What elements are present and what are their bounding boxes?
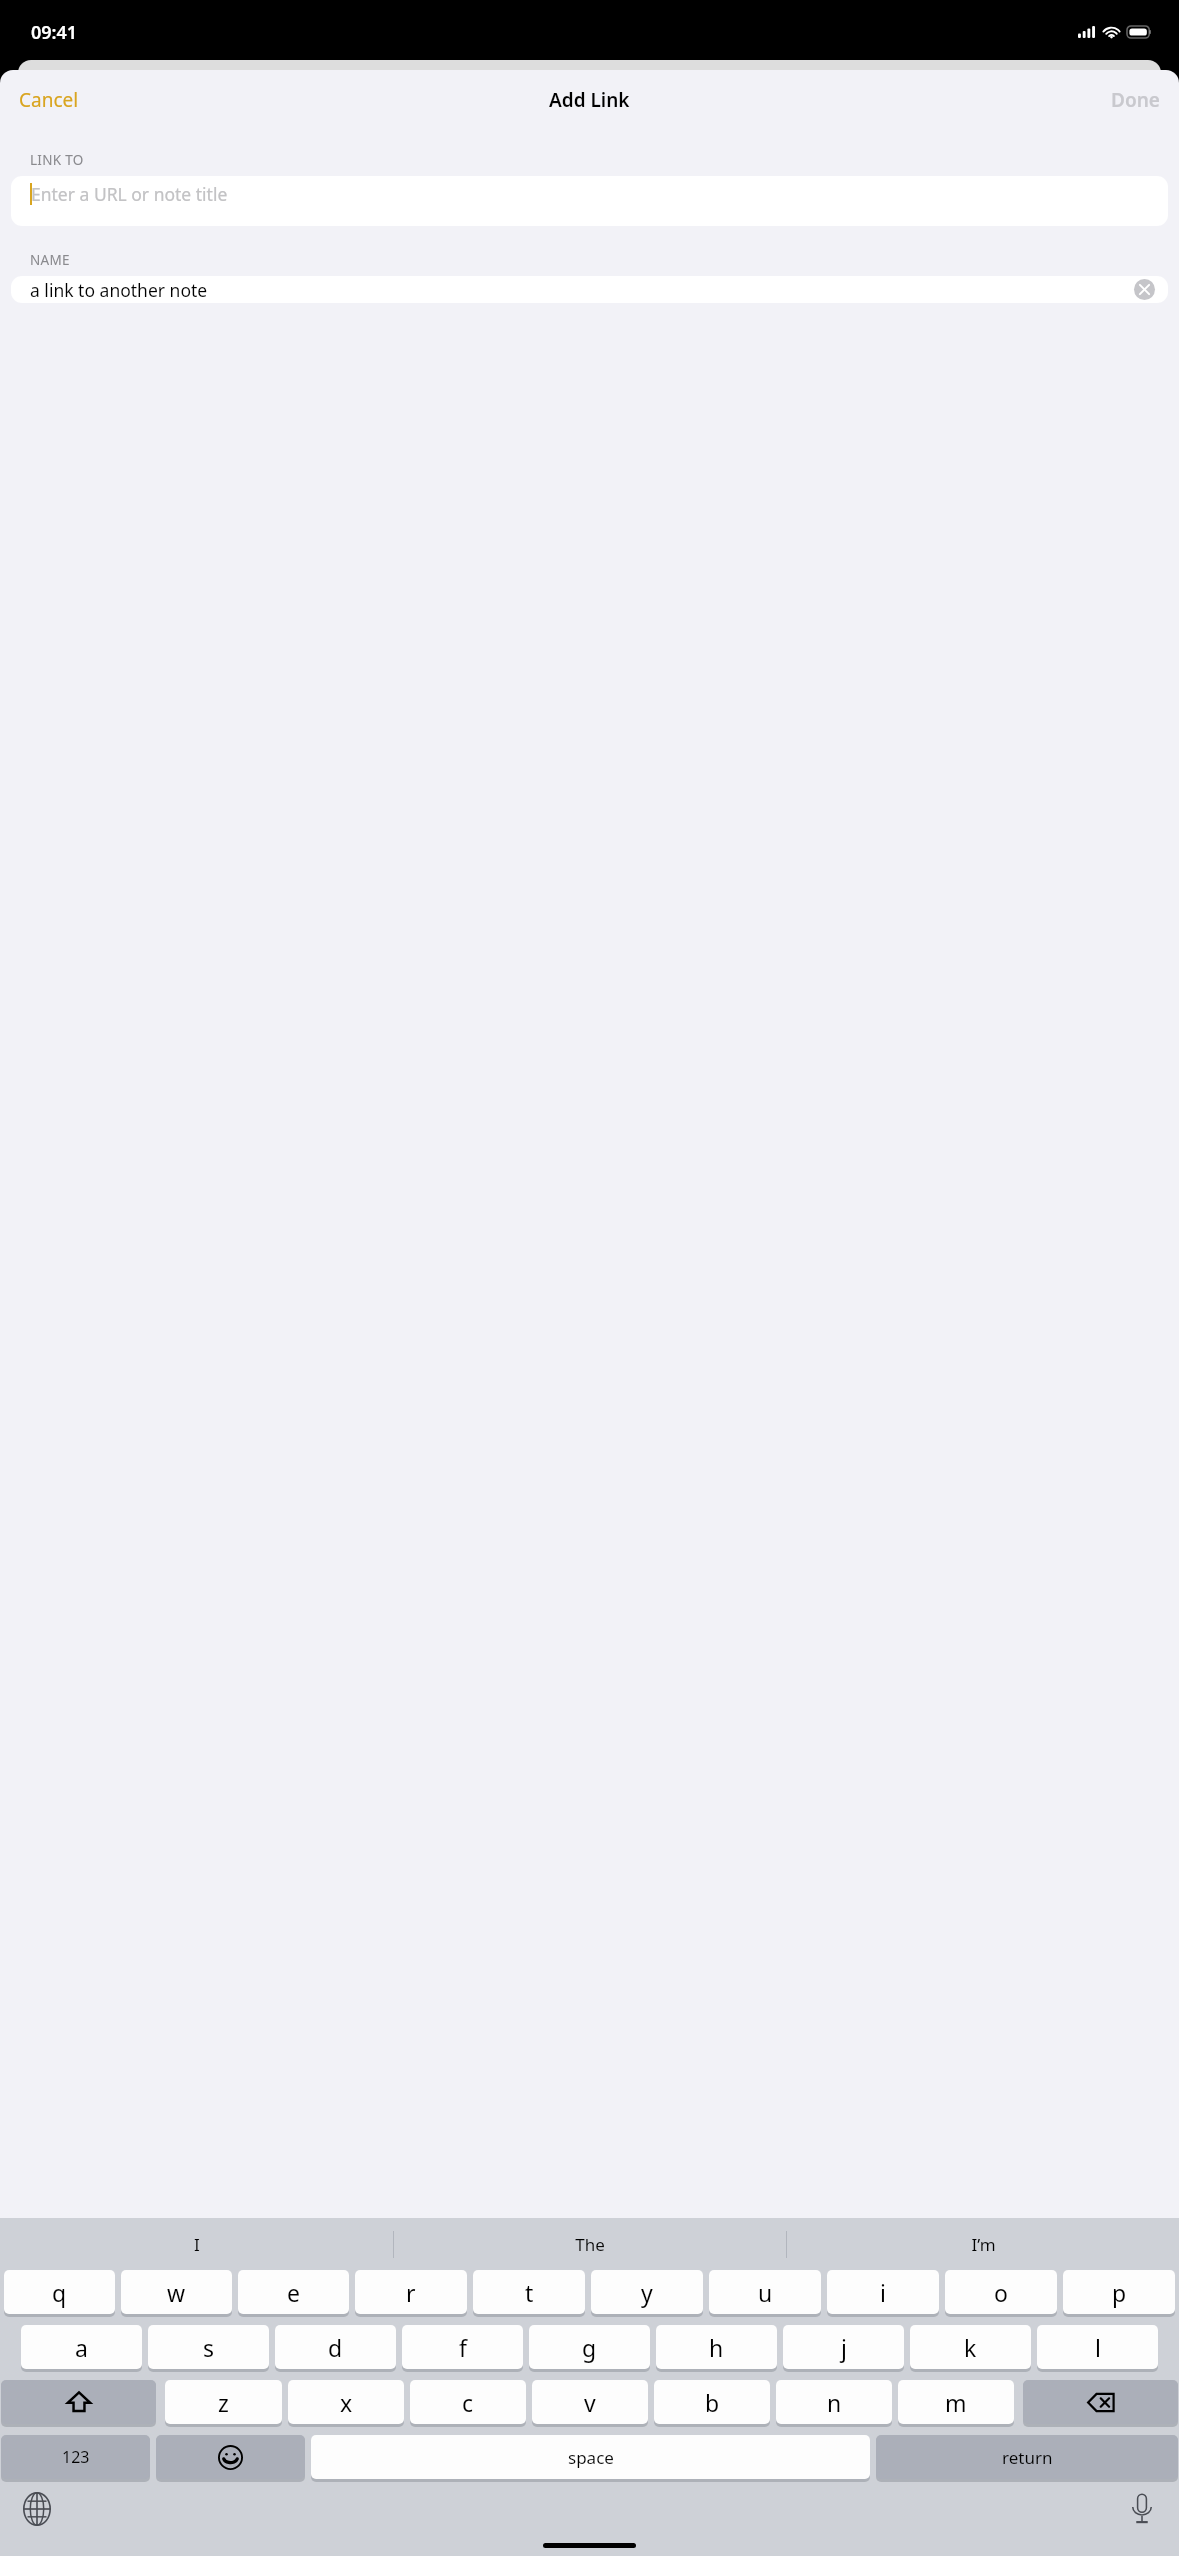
button[interactable]: space	[311, 2435, 870, 2481]
button[interactable]: Clear text	[1134, 279, 1155, 300]
staticText: h	[709, 2332, 724, 2363]
button[interactable]: x	[288, 2380, 404, 2426]
button[interactable]: h	[656, 2325, 777, 2371]
button[interactable]: 123	[1, 2435, 150, 2481]
staticText: space	[568, 2446, 614, 2469]
staticText: g	[582, 2332, 597, 2363]
staticText: i	[880, 2277, 886, 2308]
button[interactable]: a	[21, 2325, 142, 2371]
staticText: n	[827, 2387, 842, 2418]
button[interactable]: v	[532, 2380, 648, 2426]
button[interactable]: Enter a URL or note title	[11, 176, 1168, 226]
button[interactable]: m	[898, 2380, 1014, 2426]
button[interactable]: c	[410, 2380, 526, 2426]
staticText: e	[287, 2277, 300, 2308]
staticText: I	[194, 2233, 200, 2256]
button[interactable]: Cancel	[0, 78, 98, 122]
button[interactable]: w	[121, 2270, 232, 2316]
staticText: The	[575, 2233, 605, 2256]
staticText: z	[218, 2387, 229, 2418]
button[interactable]: y	[591, 2270, 703, 2316]
button[interactable]: f	[402, 2325, 523, 2371]
staticText: s	[203, 2332, 215, 2363]
button[interactable]: t	[473, 2270, 585, 2316]
staticText: k	[964, 2332, 977, 2363]
staticText: q	[52, 2277, 67, 2308]
staticText: return	[1002, 2446, 1053, 2469]
button[interactable]: k	[910, 2325, 1031, 2371]
staticText: b	[705, 2387, 720, 2418]
staticText: v	[584, 2387, 596, 2418]
button[interactable]: Done	[1092, 78, 1179, 122]
button[interactable]: i	[827, 2270, 939, 2316]
button[interactable]: Emoji	[156, 2435, 305, 2481]
staticText: u	[758, 2277, 773, 2308]
button[interactable]: g	[529, 2325, 650, 2371]
staticText: Cancel	[19, 87, 79, 113]
button[interactable]: b	[654, 2380, 770, 2426]
button[interactable]: d	[275, 2325, 396, 2371]
button[interactable]: Switch keyboard	[14, 2486, 60, 2532]
button[interactable]: u	[709, 2270, 821, 2316]
staticText: LINK TO	[30, 151, 84, 169]
button[interactable]: j	[783, 2325, 904, 2371]
staticText: a	[75, 2332, 88, 2363]
staticText: p	[1112, 2277, 1127, 2308]
staticText: x	[340, 2387, 353, 2418]
button[interactable]: The	[394, 2218, 786, 2270]
staticText: r	[406, 2277, 416, 2308]
staticText: Enter a URL or note title	[31, 182, 228, 206]
button[interactable]: I’m	[787, 2218, 1179, 2270]
staticText: 123	[62, 2446, 90, 2468]
button[interactable]: p	[1063, 2270, 1175, 2316]
button[interactable]: s	[148, 2325, 269, 2371]
staticText: l	[1095, 2332, 1101, 2363]
button[interactable]: z	[165, 2380, 282, 2426]
staticText: j	[841, 2332, 847, 2363]
staticText: Done	[1111, 87, 1160, 113]
button[interactable]: e	[238, 2270, 349, 2316]
staticText: o	[994, 2277, 1008, 2308]
button[interactable]: o	[945, 2270, 1057, 2316]
button[interactable]: Backspace	[1023, 2380, 1178, 2426]
button[interactable]: r	[355, 2270, 467, 2316]
staticText: Add Link	[549, 87, 630, 113]
staticText: y	[641, 2277, 653, 2308]
staticText: t	[525, 2277, 534, 2308]
staticText: w	[167, 2277, 186, 2308]
staticText: c	[462, 2387, 474, 2418]
staticText: I’m	[971, 2233, 996, 2256]
button[interactable]: n	[776, 2380, 892, 2426]
staticText: f	[459, 2332, 467, 2363]
staticText: m	[945, 2387, 967, 2418]
staticText: a link to another note	[30, 278, 208, 302]
button[interactable]: Dictation	[1119, 2486, 1165, 2532]
staticText: 09:41	[31, 20, 78, 45]
button[interactable]: return	[876, 2435, 1178, 2481]
button[interactable]: q	[4, 2270, 115, 2316]
button[interactable]: I	[0, 2218, 393, 2270]
staticText: d	[328, 2332, 343, 2363]
button[interactable]: Shift	[1, 2380, 156, 2426]
button[interactable]: l	[1037, 2325, 1158, 2371]
staticText: NAME	[30, 251, 70, 269]
button[interactable]: a link to another note	[11, 276, 1168, 303]
